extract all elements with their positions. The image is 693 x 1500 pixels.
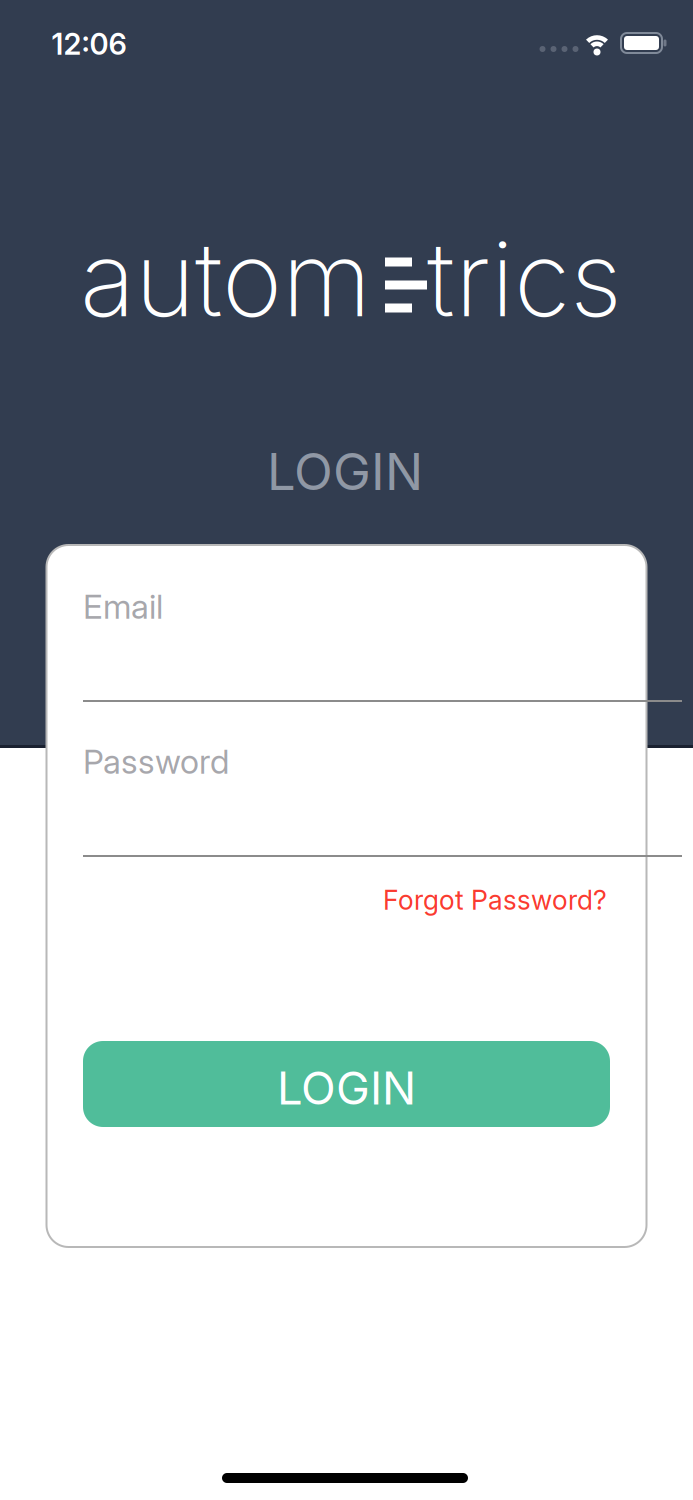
button[interactable]: Forgot Password?: [383, 884, 607, 916]
staticText: autom: [80, 218, 371, 339]
button[interactable]: Email: [83, 587, 682, 702]
staticText: Forgot Password?: [383, 884, 607, 916]
staticText: trics: [427, 218, 622, 339]
staticText: Password: [83, 742, 229, 781]
button[interactable]: LOGIN: [83, 1041, 610, 1127]
button[interactable]: Password: [83, 742, 682, 857]
staticText: Email: [83, 587, 163, 626]
staticText: 12:06: [51, 27, 126, 61]
staticText: LOGIN: [277, 1061, 416, 1115]
staticText: LOGIN: [267, 442, 423, 501]
